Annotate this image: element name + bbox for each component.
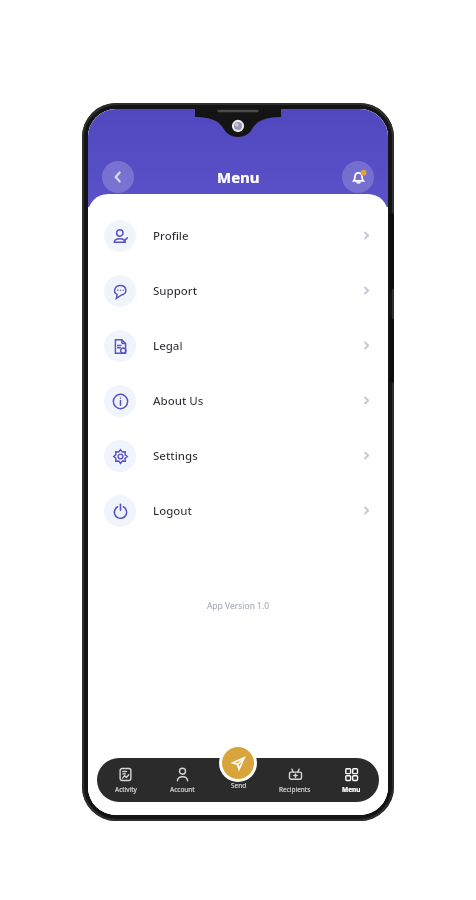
staticText: App Version 1.0: [88, 600, 388, 612]
button[interactable]: Legal: [88, 318, 388, 373]
button[interactable]: Profile: [88, 208, 388, 263]
button[interactable]: Activity: [97, 758, 154, 802]
staticText: Logout: [153, 503, 192, 519]
button[interactable]: Notifications: [342, 161, 374, 193]
staticText: Legal: [153, 338, 183, 354]
button[interactable]: Logout: [88, 483, 388, 538]
staticText: Support: [153, 283, 198, 299]
button[interactable]: Send: [211, 758, 267, 802]
staticText: Send: [231, 781, 247, 790]
button[interactable]: Account: [154, 758, 211, 802]
staticText: About Us: [153, 393, 204, 409]
button[interactable]: Settings: [88, 428, 388, 483]
staticText: Activity: [115, 785, 137, 794]
button[interactable]: Menu: [323, 758, 379, 802]
staticText: Recipients: [279, 785, 311, 794]
staticText: Account: [170, 785, 195, 794]
button[interactable]: Send money: [222, 747, 254, 779]
staticText: Profile: [153, 228, 189, 244]
button[interactable]: Back: [102, 161, 134, 193]
staticText: Menu: [217, 167, 260, 187]
button[interactable]: About Us: [88, 373, 388, 428]
staticText: Settings: [153, 448, 198, 464]
button[interactable]: Support: [88, 263, 388, 318]
staticText: Menu: [342, 785, 361, 794]
button[interactable]: Recipients: [267, 758, 323, 802]
